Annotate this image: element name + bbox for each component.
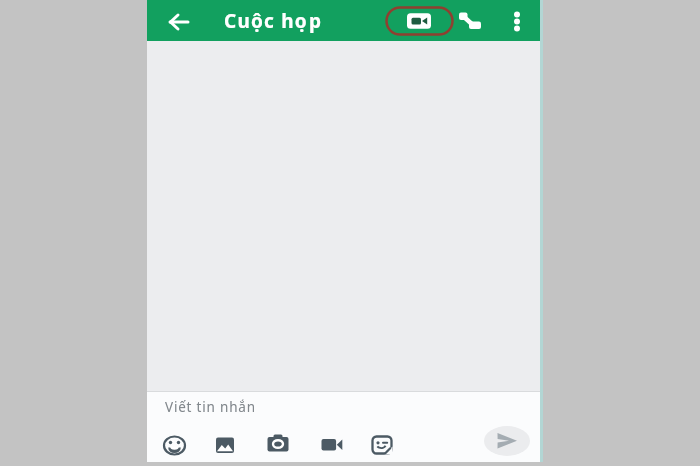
button[interactable] — [313, 428, 350, 462]
button[interactable] — [397, 3, 441, 39]
button[interactable] — [207, 428, 243, 462]
staticText: Cuộc họp — [224, 8, 323, 34]
button[interactable] — [163, 6, 195, 38]
button[interactable]: Viết tin nhắn — [147, 392, 540, 422]
staticText: Viết tin nhắn — [165, 398, 256, 416]
button[interactable] — [504, 3, 530, 39]
button[interactable] — [260, 428, 296, 462]
button[interactable] — [364, 428, 400, 462]
button[interactable] — [156, 428, 193, 462]
button[interactable] — [481, 423, 533, 459]
button[interactable] — [452, 3, 488, 39]
